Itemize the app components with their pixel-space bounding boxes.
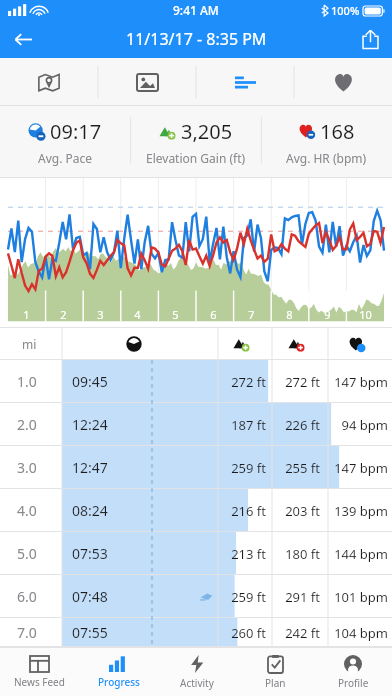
staticText: 242 ft (276, 624, 320, 642)
staticText: 139 bpm (330, 502, 388, 520)
staticText: 08:24 (72, 501, 108, 520)
button[interactable]: 4.0 (0, 489, 392, 532)
staticText: 09:17 (50, 118, 102, 145)
staticText: mi (22, 336, 37, 352)
staticText: 6 (210, 307, 217, 322)
button[interactable]: Photos (98, 58, 196, 106)
staticText: Avg. Pace (38, 150, 93, 166)
staticText: 12:47 (72, 458, 108, 477)
staticText: 09:45 (72, 372, 108, 391)
staticText: 104 bpm (330, 624, 388, 642)
button[interactable]: Map (0, 58, 98, 106)
staticText: 7.0 (17, 623, 37, 642)
staticText: 272 ft (222, 373, 266, 391)
button[interactable]: Health (294, 58, 392, 106)
staticText: 9 (324, 307, 331, 322)
staticText: 260 ft (222, 624, 266, 642)
staticText: 3.0 (17, 458, 37, 477)
button[interactable]: 3,205 (130, 106, 261, 178)
staticText: 10 (359, 307, 372, 322)
staticText: Elevation Gain (ft) (146, 150, 246, 166)
staticText: 07:48 (72, 587, 108, 606)
staticText: 3 (97, 307, 104, 322)
staticText: 1.0 (17, 372, 37, 391)
staticText: Activity (180, 676, 214, 690)
staticText: 144 bpm (330, 545, 388, 563)
staticText: 168 (320, 118, 355, 145)
staticText: 213 ft (222, 545, 266, 563)
staticText: 100% (331, 3, 360, 18)
staticText: Profile (338, 676, 369, 690)
staticText: 5 (172, 307, 179, 322)
staticText: 2 (60, 307, 67, 322)
staticText: 12:24 (72, 415, 108, 434)
button[interactable]: Progress (79, 648, 158, 696)
staticText: 272 ft (276, 373, 320, 391)
staticText: 187 ft (222, 416, 266, 434)
button[interactable]: 09:17 (0, 106, 130, 178)
staticText: 94 bpm (330, 416, 388, 434)
button[interactable]: 7.0 (0, 618, 392, 647)
staticText: 4.0 (17, 501, 37, 520)
staticText: 5.0 (17, 544, 37, 563)
staticText: 8 (286, 307, 293, 322)
staticText: 2.0 (17, 415, 37, 434)
staticText: 255 ft (276, 459, 320, 477)
staticText: 203 ft (276, 502, 320, 520)
button[interactable]: 6.0 (0, 575, 392, 618)
staticText: 147 bpm (330, 373, 388, 391)
staticText: 101 bpm (330, 588, 388, 606)
button[interactable]: 1.0 (0, 360, 392, 403)
button[interactable]: Activity (158, 648, 236, 696)
button[interactable]: 5.0 (0, 532, 392, 575)
staticText: 259 ft (222, 588, 266, 606)
staticText: 3,205 (181, 118, 233, 145)
staticText: Progress (98, 675, 140, 689)
button[interactable]: Plan (236, 648, 314, 696)
staticText: 216 ft (222, 502, 266, 520)
button[interactable]: 168 (261, 106, 392, 178)
button[interactable]: Back (0, 20, 46, 58)
button[interactable]: News Feed (0, 648, 79, 696)
staticText: 259 ft (222, 459, 266, 477)
button[interactable]: Splits (196, 58, 294, 106)
button[interactable]: Profile (314, 648, 392, 696)
staticText: 9:41 AM (173, 2, 219, 18)
staticText: 1 (23, 307, 30, 322)
staticText: Plan (265, 676, 286, 690)
button[interactable]: 2.0 (0, 403, 392, 446)
staticText: 4 (134, 307, 141, 322)
button[interactable]: 3.0 (0, 446, 392, 489)
staticText: 291 ft (276, 588, 320, 606)
staticText: 07:55 (72, 623, 108, 642)
staticText: 147 bpm (330, 459, 388, 477)
staticText: 6.0 (17, 587, 37, 606)
staticText: 226 ft (276, 416, 320, 434)
staticText: 07:53 (72, 544, 108, 563)
button[interactable]: Share (348, 20, 392, 58)
staticText: 180 ft (276, 545, 320, 563)
staticText: News Feed (14, 675, 65, 689)
staticText: 11/13/17 - 8:35 PM (126, 28, 267, 50)
staticText: 7 (248, 307, 255, 322)
staticText: Avg. HR (bpm) (286, 150, 367, 166)
